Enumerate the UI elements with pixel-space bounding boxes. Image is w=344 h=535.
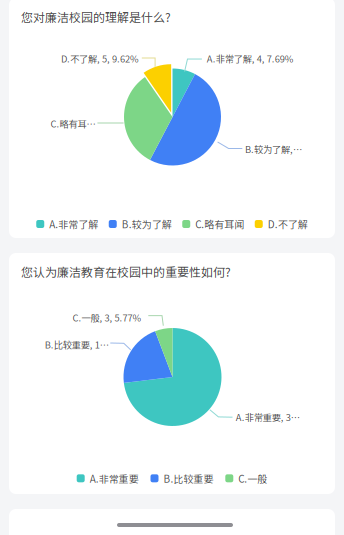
- staticText: D.不了解, 5, 9.62%: [61, 52, 139, 65]
- staticText: B.比较重要: [163, 471, 213, 486]
- staticText: 您认为廉洁教育在校园中的重要性如何?: [21, 263, 231, 280]
- staticText: A.非常重要, 3…: [236, 410, 300, 424]
- staticText: C.一般, 3, 5.77%: [73, 311, 142, 324]
- staticText: C.一般: [238, 471, 267, 486]
- staticText: C.略有耳…: [50, 117, 95, 130]
- staticText: A.非常了解: [49, 217, 98, 231]
- staticText: C.略有耳闻: [195, 217, 244, 231]
- staticText: B.比较重要, 1…: [45, 338, 109, 351]
- staticText: D.不了解: [268, 217, 308, 231]
- staticText: B.较为了解,…: [245, 142, 302, 156]
- staticText: B.较为了解: [122, 217, 172, 231]
- staticText: A.非常重要: [90, 471, 139, 486]
- staticText: 您对廉洁校园的理解是什么?: [21, 8, 171, 25]
- staticText: A.非常了解, 4, 7.69%: [207, 52, 294, 65]
